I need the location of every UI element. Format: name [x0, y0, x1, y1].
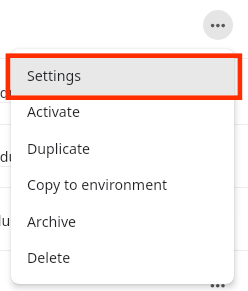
staticText: Production — [0, 211, 44, 230]
staticText: Settings — [27, 66, 81, 85]
button[interactable]: More options — [203, 10, 233, 40]
staticText: Delete — [27, 248, 71, 267]
staticText: Production — [0, 147, 51, 166]
staticText: Archive — [27, 212, 77, 231]
button[interactable]: Settings — [11, 57, 234, 93]
staticText: Activate — [27, 102, 80, 121]
button[interactable]: Copy to environment — [11, 166, 234, 202]
button[interactable]: Activate — [11, 93, 234, 129]
button[interactable]: Delete — [11, 239, 234, 275]
staticText: Copy to environment — [27, 175, 168, 194]
button[interactable]: More options — [206, 279, 230, 291]
staticText: Duplicate — [27, 139, 91, 158]
staticText: Production — [0, 83, 51, 102]
button[interactable]: Archive — [11, 203, 234, 239]
button[interactable]: Duplicate — [11, 130, 234, 166]
